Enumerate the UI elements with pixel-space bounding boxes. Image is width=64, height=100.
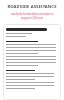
button[interactable] — [3, 24, 61, 100]
staticText: roadside breakdown assistance support 24… — [0, 12, 64, 20]
staticText: ROADSIDE ASSISTANCE — [0, 4, 64, 10]
